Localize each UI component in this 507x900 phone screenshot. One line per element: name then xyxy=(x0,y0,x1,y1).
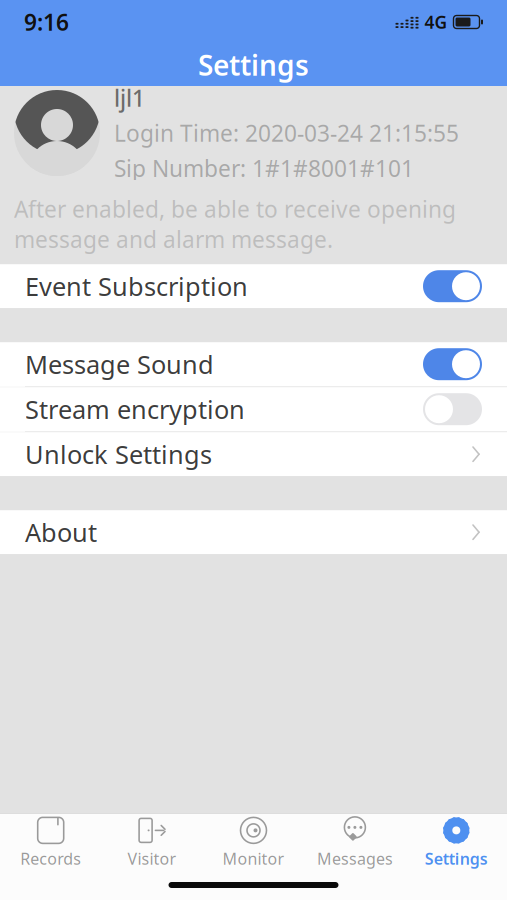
staticText: Messages xyxy=(317,848,393,869)
button[interactable]: Stream encryption xyxy=(0,387,507,431)
staticText: Settings xyxy=(198,46,309,84)
staticText: Settings xyxy=(425,848,488,869)
staticText: ljl1 xyxy=(114,83,145,113)
staticText: Message Sound xyxy=(25,347,214,381)
staticText: After enabled, be able to receive openin… xyxy=(14,194,456,254)
button[interactable]: Settings xyxy=(406,811,507,873)
staticText: Login Time: 2020-03-24 21:15:55 xyxy=(114,118,459,148)
staticText: 4G xyxy=(424,10,447,33)
button[interactable]: Visitor xyxy=(101,811,203,873)
button[interactable]: About xyxy=(0,510,507,554)
button[interactable]: Monitor xyxy=(203,811,304,873)
staticText: Unlock Settings xyxy=(25,437,212,471)
staticText: Monitor xyxy=(222,848,284,869)
button[interactable]: Unlock Settings xyxy=(0,432,507,476)
staticText: Stream encryption xyxy=(25,392,245,426)
staticText: Event Subscription xyxy=(25,269,248,303)
button[interactable]: Messages xyxy=(304,811,406,873)
button[interactable]: Message Sound xyxy=(0,342,507,386)
staticText: About xyxy=(25,515,97,549)
staticText: Records xyxy=(20,848,81,869)
staticText: 9:16 xyxy=(24,7,69,37)
button[interactable]: Records xyxy=(0,811,101,873)
staticText: Visitor xyxy=(128,848,177,869)
staticText: Sip Number: 1#1#8001#101 xyxy=(114,153,414,183)
button[interactable]: Event Subscription xyxy=(0,264,507,308)
